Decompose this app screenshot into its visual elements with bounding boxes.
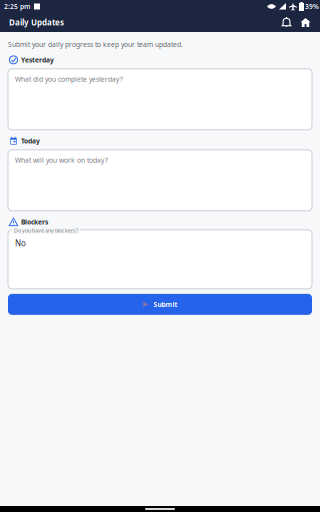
staticText: Do you have any blockers? [14,227,78,234]
staticText: No [15,238,26,248]
button[interactable]: Home [296,13,315,32]
staticText: What did you complete yesterday? [15,75,123,84]
staticText: Today [21,136,40,145]
staticText: 39% [305,2,319,11]
button[interactable]: Submit [8,294,312,315]
staticText: What will you work on today? [15,156,108,165]
staticText: Submit your daily progress to keep your … [8,40,183,49]
staticText: Submit [154,300,178,309]
staticText: Daily Updates [9,17,64,28]
staticText: Blockers [21,217,48,226]
button[interactable]: Notifications [277,13,296,32]
staticText: 2:25 pm [4,2,30,11]
staticText: Yesterday [21,55,54,64]
